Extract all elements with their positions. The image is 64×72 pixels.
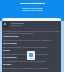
staticText: Install the SDK and create your first pr… — [3, 39, 51, 41]
button[interactable]: Open docs app — [27, 51, 35, 60]
staticText: Getting started — [3, 35, 19, 38]
staticText: Samples — [3, 63, 12, 66]
staticText: Step by step tutorials that cover the mo… — [3, 53, 49, 55]
staticText: Welcome to the developer reference docum… — [22, 7, 43, 11]
staticText: Browse runnable example applications and… — [3, 67, 50, 69]
staticText: Guides — [3, 49, 10, 52]
staticText: A complete listing of every class, metho… — [3, 60, 47, 62]
staticText: This guide walks through everything you … — [3, 30, 60, 34]
staticText: Learn how components, state and layout w… — [3, 46, 48, 48]
staticText: API reference — [3, 56, 17, 59]
staticText: Coding documentation — [20, 2, 45, 5]
staticText: Core concepts — [3, 42, 18, 45]
